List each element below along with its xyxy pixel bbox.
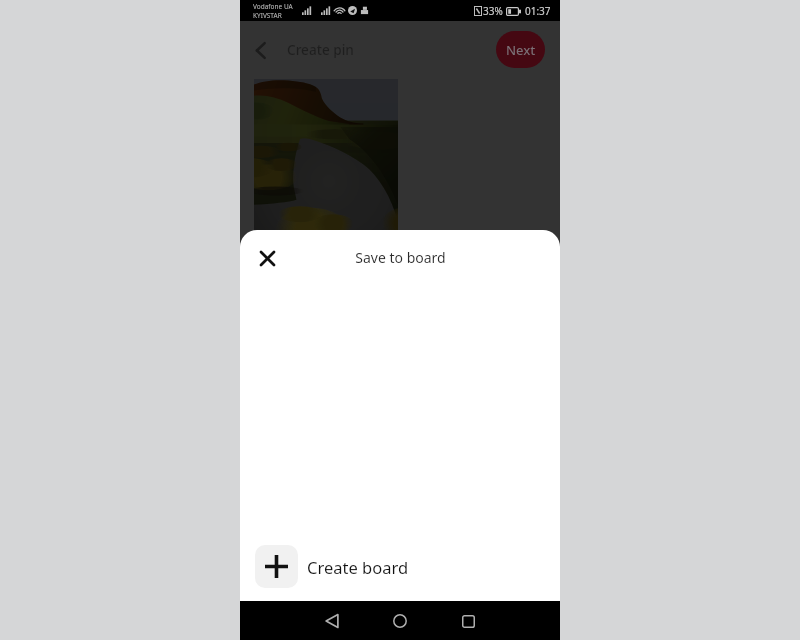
staticText: 33% [483,4,503,18]
staticText: Next [506,41,536,59]
button[interactable]: Back [243,33,277,67]
staticText: Create pin [287,40,354,59]
staticText: 01:37 [525,4,551,18]
button[interactable]: Back [315,604,349,638]
button[interactable]: Close [252,243,282,273]
button[interactable]: Create board [240,532,560,601]
button[interactable]: Home [383,604,417,638]
staticText: KYIVSTAR [253,11,282,20]
button[interactable]: Recents [451,604,485,638]
staticText: Create board [307,556,409,578]
button[interactable]: Next [496,31,545,68]
staticText: Save to board [355,248,446,267]
staticText: Vodafone UA [253,2,293,11]
